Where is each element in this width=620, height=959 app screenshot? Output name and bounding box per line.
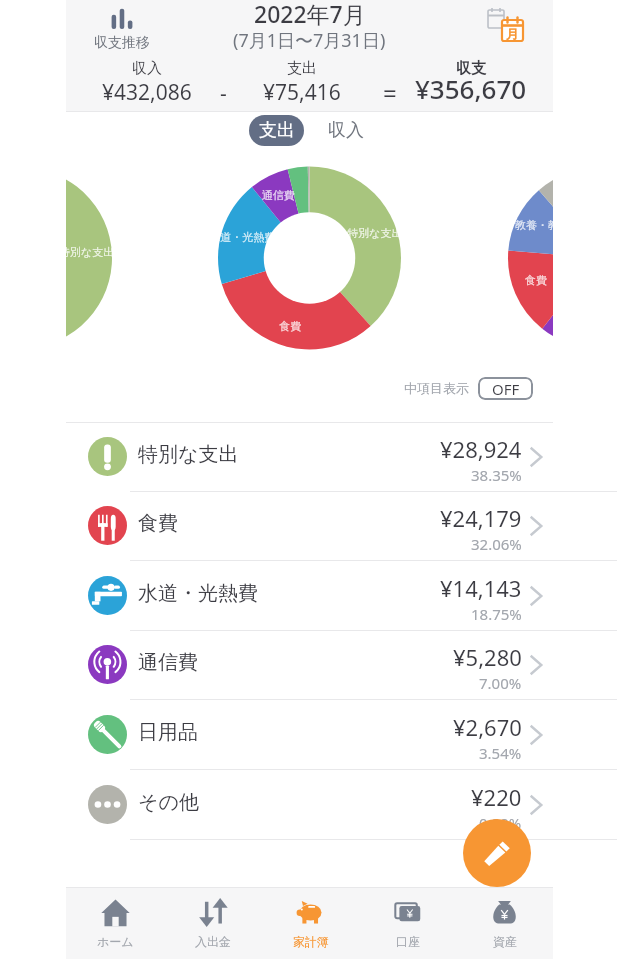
button[interactable]: 食費	[66, 491, 553, 561]
button[interactable]: 支出	[249, 115, 304, 146]
staticText: 特別な支出	[138, 442, 239, 467]
staticText: 7.00%	[479, 673, 522, 693]
staticText: 2022年7月	[254, 0, 366, 29]
button[interactable]: 家計簿	[262, 888, 359, 959]
staticText: ¥5,280	[453, 642, 522, 672]
staticText: ¥24,179	[440, 503, 522, 533]
staticText: ¥75,416	[263, 78, 341, 107]
staticText: 3.54%	[479, 743, 522, 763]
staticText: OFF	[492, 379, 520, 399]
button[interactable]: 資産	[456, 888, 553, 959]
button[interactable]: 通信費	[66, 630, 553, 700]
staticText: 0.29%	[479, 813, 522, 833]
staticText: 32.06%	[471, 534, 522, 554]
staticText: ¥14,143	[440, 573, 522, 603]
button[interactable]: Select month	[478, 0, 524, 44]
button[interactable]: ホーム	[66, 888, 164, 959]
staticText: 収入	[132, 59, 162, 78]
staticText: 収支推移	[94, 34, 150, 52]
staticText: ¥220	[471, 782, 522, 812]
staticText: 食費	[138, 511, 178, 536]
staticText: =	[383, 76, 397, 109]
staticText: 口座	[396, 934, 420, 949]
button[interactable]: 水道・光熱費	[66, 561, 553, 631]
button[interactable]: 口座	[359, 888, 456, 959]
button[interactable]: 日用品	[66, 700, 553, 770]
staticText: 支出	[287, 59, 317, 78]
staticText: 月	[506, 26, 519, 42]
staticText: 収入	[328, 119, 364, 142]
staticText: 18.75%	[471, 604, 522, 624]
staticText: 中項目表示	[404, 380, 469, 396]
button[interactable]: Add transaction	[463, 819, 531, 887]
button[interactable]: OFF	[478, 377, 533, 400]
staticText: 資産	[493, 934, 517, 949]
staticText: その他	[138, 790, 199, 815]
staticText: 支出	[259, 119, 295, 142]
staticText: ホーム	[97, 934, 134, 949]
staticText: 家計簿	[293, 934, 329, 949]
staticText: ¥28,924	[440, 434, 522, 464]
staticText: 入出金	[195, 934, 231, 949]
staticText: 水道・光熱費	[138, 581, 258, 606]
staticText: ¥356,670	[415, 71, 527, 106]
button[interactable]: その他	[66, 770, 553, 840]
staticText: 日用品	[138, 720, 198, 745]
button[interactable]: 入出金	[164, 888, 262, 959]
staticText: (7月1日〜7月31日)	[233, 28, 386, 53]
button[interactable]: 収支推移	[75, 8, 169, 52]
staticText: 通信費	[138, 650, 198, 675]
staticText: 収支	[456, 59, 486, 78]
staticText: -	[220, 79, 227, 108]
staticText: ¥432,086	[102, 78, 192, 107]
staticText: ¥2,670	[453, 712, 522, 742]
button[interactable]: 特別な支出	[66, 422, 553, 492]
button[interactable]: 収入	[318, 115, 373, 146]
staticText: 38.35%	[471, 465, 522, 485]
